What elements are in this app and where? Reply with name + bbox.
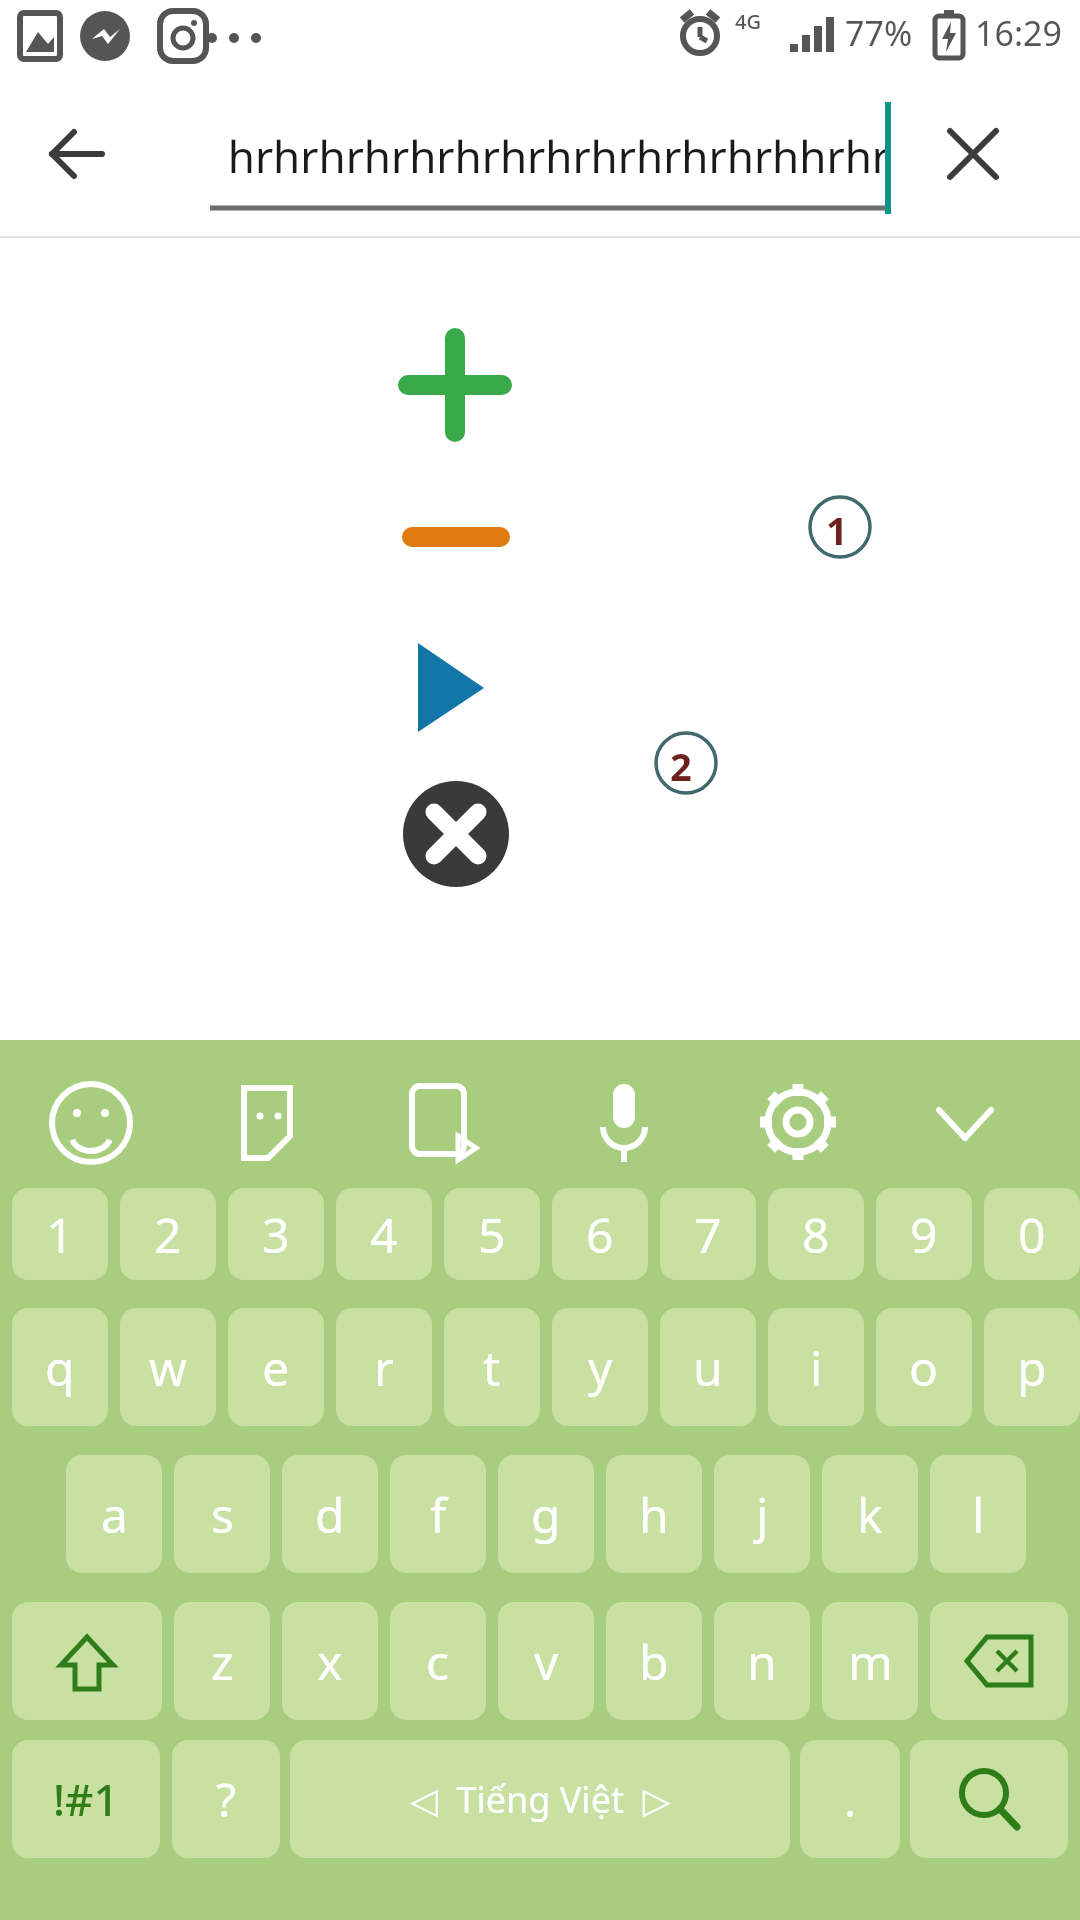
- button[interactable]: k: [822, 1455, 918, 1573]
- button[interactable]: Voice input: [585, 1080, 671, 1166]
- button[interactable]: x: [282, 1602, 378, 1720]
- staticText: j: [756, 1482, 769, 1547]
- staticText: h: [639, 1482, 669, 1547]
- button[interactable]: u: [660, 1308, 756, 1426]
- staticText: d: [315, 1482, 345, 1547]
- staticText: s: [211, 1482, 234, 1547]
- staticText: q: [45, 1335, 75, 1400]
- button[interactable]: 2: [120, 1188, 216, 1280]
- button[interactable]: 5: [444, 1188, 540, 1280]
- button[interactable]: c: [390, 1602, 486, 1720]
- button[interactable]: b: [606, 1602, 702, 1720]
- staticText: w: [149, 1335, 187, 1400]
- button[interactable]: ◁ Tiếng Việt ▷: [290, 1740, 790, 1858]
- staticText: ?: [216, 1768, 236, 1831]
- staticText: ◁ Tiếng Việt ▷: [410, 1775, 671, 1824]
- button[interactable]: j: [714, 1455, 810, 1573]
- staticText: hrhrhrhrhrhrhrhrhrhrhrhrhhrhrhrh: [210, 126, 890, 186]
- staticText: f: [430, 1482, 447, 1547]
- staticText: e: [262, 1335, 290, 1400]
- staticText: 77%: [845, 10, 913, 56]
- button[interactable]: Back: [26, 106, 122, 202]
- button[interactable]: 4: [336, 1188, 432, 1280]
- button[interactable]: Stickers: [228, 1080, 314, 1166]
- staticText: 4G: [735, 8, 761, 35]
- staticText: 9: [910, 1202, 938, 1267]
- button[interactable]: 1: [12, 1188, 108, 1280]
- staticText: !#1: [53, 1769, 119, 1829]
- button[interactable]: Shift: [12, 1602, 162, 1720]
- button[interactable]: Emoji: [48, 1080, 134, 1166]
- staticText: 2: [154, 1202, 182, 1267]
- staticText: r: [374, 1335, 394, 1400]
- button[interactable]: z: [174, 1602, 270, 1720]
- staticText: g: [531, 1482, 561, 1547]
- button[interactable]: !#1: [12, 1740, 160, 1858]
- staticText: 16:29: [975, 10, 1062, 56]
- staticText: n: [747, 1629, 777, 1694]
- button[interactable]: y: [552, 1308, 648, 1426]
- button[interactable]: 7: [660, 1188, 756, 1280]
- staticText: x: [317, 1629, 343, 1694]
- button[interactable]: Search: [910, 1740, 1068, 1858]
- staticText: l: [972, 1482, 985, 1547]
- staticText: u: [693, 1335, 723, 1400]
- button[interactable]: o: [876, 1308, 972, 1426]
- button[interactable]: p: [984, 1308, 1080, 1426]
- button[interactable]: s: [174, 1455, 270, 1573]
- button[interactable]: hrhrhrhrhrhrhrhrhrhrhrhrhhrhrhrh: [210, 94, 890, 214]
- staticText: o: [909, 1335, 939, 1400]
- button[interactable]: r: [336, 1308, 432, 1426]
- button[interactable]: l: [930, 1455, 1026, 1573]
- staticText: b: [639, 1629, 669, 1694]
- button[interactable]: 6: [552, 1188, 648, 1280]
- staticText: 3: [262, 1202, 290, 1267]
- staticText: 2: [670, 740, 692, 792]
- button[interactable]: ?: [172, 1740, 280, 1858]
- staticText: c: [426, 1629, 450, 1694]
- button[interactable]: e: [228, 1308, 324, 1426]
- button[interactable]: 0: [984, 1188, 1080, 1280]
- button[interactable]: i: [768, 1308, 864, 1426]
- button[interactable]: Settings: [758, 1080, 844, 1166]
- button[interactable]: g: [498, 1455, 594, 1573]
- button[interactable]: d: [282, 1455, 378, 1573]
- staticText: 4: [370, 1202, 398, 1267]
- staticText: 5: [478, 1202, 506, 1267]
- staticText: i: [810, 1335, 823, 1400]
- staticText: .: [844, 1768, 857, 1831]
- button[interactable]: 3: [228, 1188, 324, 1280]
- staticText: k: [857, 1482, 883, 1547]
- staticText: y: [588, 1335, 613, 1400]
- staticText: a: [101, 1482, 128, 1547]
- button[interactable]: t: [444, 1308, 540, 1426]
- button[interactable]: w: [120, 1308, 216, 1426]
- button[interactable]: .: [800, 1740, 900, 1858]
- button[interactable]: f: [390, 1455, 486, 1573]
- button[interactable]: Backspace: [930, 1602, 1068, 1720]
- button[interactable]: 8: [768, 1188, 864, 1280]
- button[interactable]: a: [66, 1455, 162, 1573]
- staticText: 7: [694, 1202, 722, 1267]
- button[interactable]: q: [12, 1308, 108, 1426]
- button[interactable]: 9: [876, 1188, 972, 1280]
- staticText: 1: [826, 504, 848, 556]
- staticText: 6: [586, 1202, 614, 1267]
- staticText: 1: [46, 1202, 74, 1267]
- staticText: p: [1017, 1335, 1047, 1400]
- button[interactable]: Clear: [925, 106, 1021, 202]
- button[interactable]: n: [714, 1602, 810, 1720]
- button[interactable]: m: [822, 1602, 918, 1720]
- button[interactable]: Hide keyboard: [925, 1080, 1011, 1166]
- staticText: m: [848, 1629, 893, 1694]
- button[interactable]: GIF: [400, 1080, 486, 1166]
- staticText: 0: [1018, 1202, 1046, 1267]
- staticText: t: [483, 1335, 501, 1400]
- button[interactable]: h: [606, 1455, 702, 1573]
- button[interactable]: v: [498, 1602, 594, 1720]
- staticText: 8: [802, 1202, 830, 1267]
- staticText: z: [211, 1629, 234, 1694]
- staticText: v: [534, 1629, 559, 1694]
